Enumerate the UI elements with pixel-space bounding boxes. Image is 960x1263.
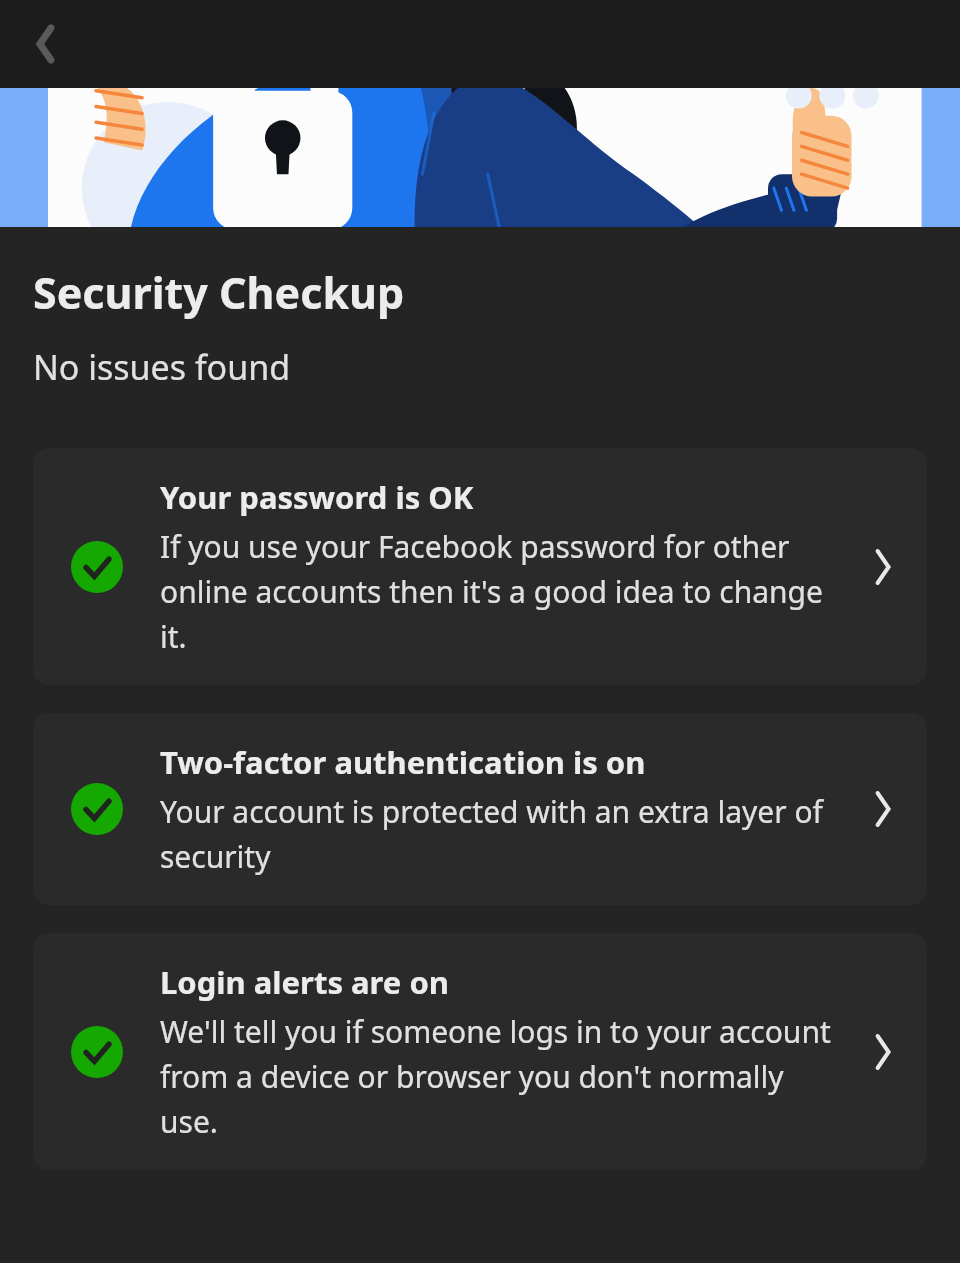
staticText: We'll tell you if someone logs in to you…	[160, 1011, 835, 1142]
button[interactable]: Login alerts are on	[33, 933, 927, 1170]
staticText: Your account is protected with an extra …	[160, 791, 835, 877]
button[interactable]: Your password is OK	[33, 448, 927, 685]
staticText: Login alerts are on	[160, 961, 449, 1003]
staticText: Security Checkup	[33, 263, 405, 322]
staticText: If you use your Facebook password for ot…	[160, 526, 835, 657]
staticText: No issues found	[33, 344, 291, 390]
button[interactable]: Back	[8, 8, 80, 80]
staticText: Two-factor authentication is on	[160, 741, 646, 783]
button[interactable]: Two-factor authentication is on	[33, 713, 927, 905]
staticText: Your password is OK	[160, 476, 474, 518]
